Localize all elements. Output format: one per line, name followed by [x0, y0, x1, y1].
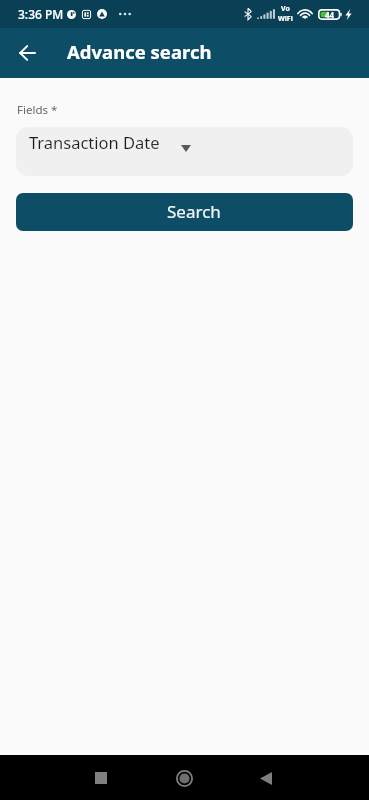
staticText: Fields * — [17, 102, 58, 118]
staticText: Transaction Date — [29, 131, 160, 153]
staticText: Vo — [281, 4, 290, 14]
button[interactable]: Recent apps — [79, 756, 123, 800]
staticText: WiFi — [278, 14, 293, 24]
button[interactable]: Back — [244, 756, 288, 800]
button[interactable]: Back — [6, 32, 48, 74]
staticText: 3:36 PM — [18, 6, 64, 22]
staticText: Advance search — [67, 39, 212, 64]
button[interactable]: Transaction Date — [16, 127, 353, 176]
staticText: 44 — [325, 9, 335, 20]
button[interactable]: Search — [16, 193, 353, 231]
button[interactable]: Home — [162, 756, 206, 800]
staticText: Search — [167, 200, 221, 223]
